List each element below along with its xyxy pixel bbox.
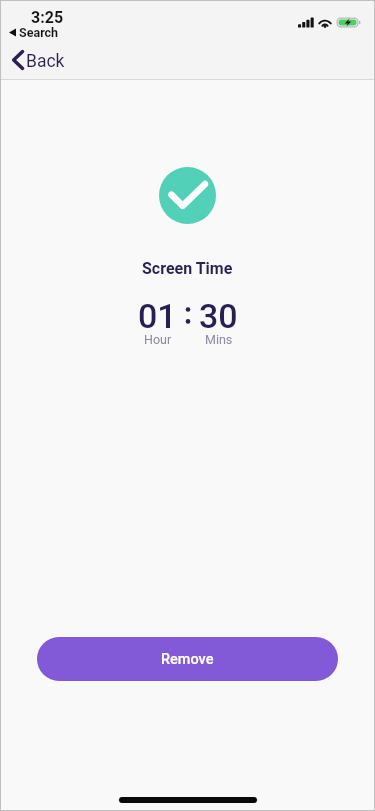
staticText: 30 [199,296,238,336]
staticText: Mins [205,332,233,347]
staticText: 3:25 [31,8,64,27]
staticText: Hour [144,332,172,347]
staticText: 01 [138,296,177,336]
button[interactable]: Remove [37,637,338,681]
staticText: Back [26,51,65,72]
staticText: Screen Time [142,259,233,278]
staticText: Remove [161,651,214,668]
button[interactable]: Back [9,46,68,73]
staticText: Search [19,25,59,40]
